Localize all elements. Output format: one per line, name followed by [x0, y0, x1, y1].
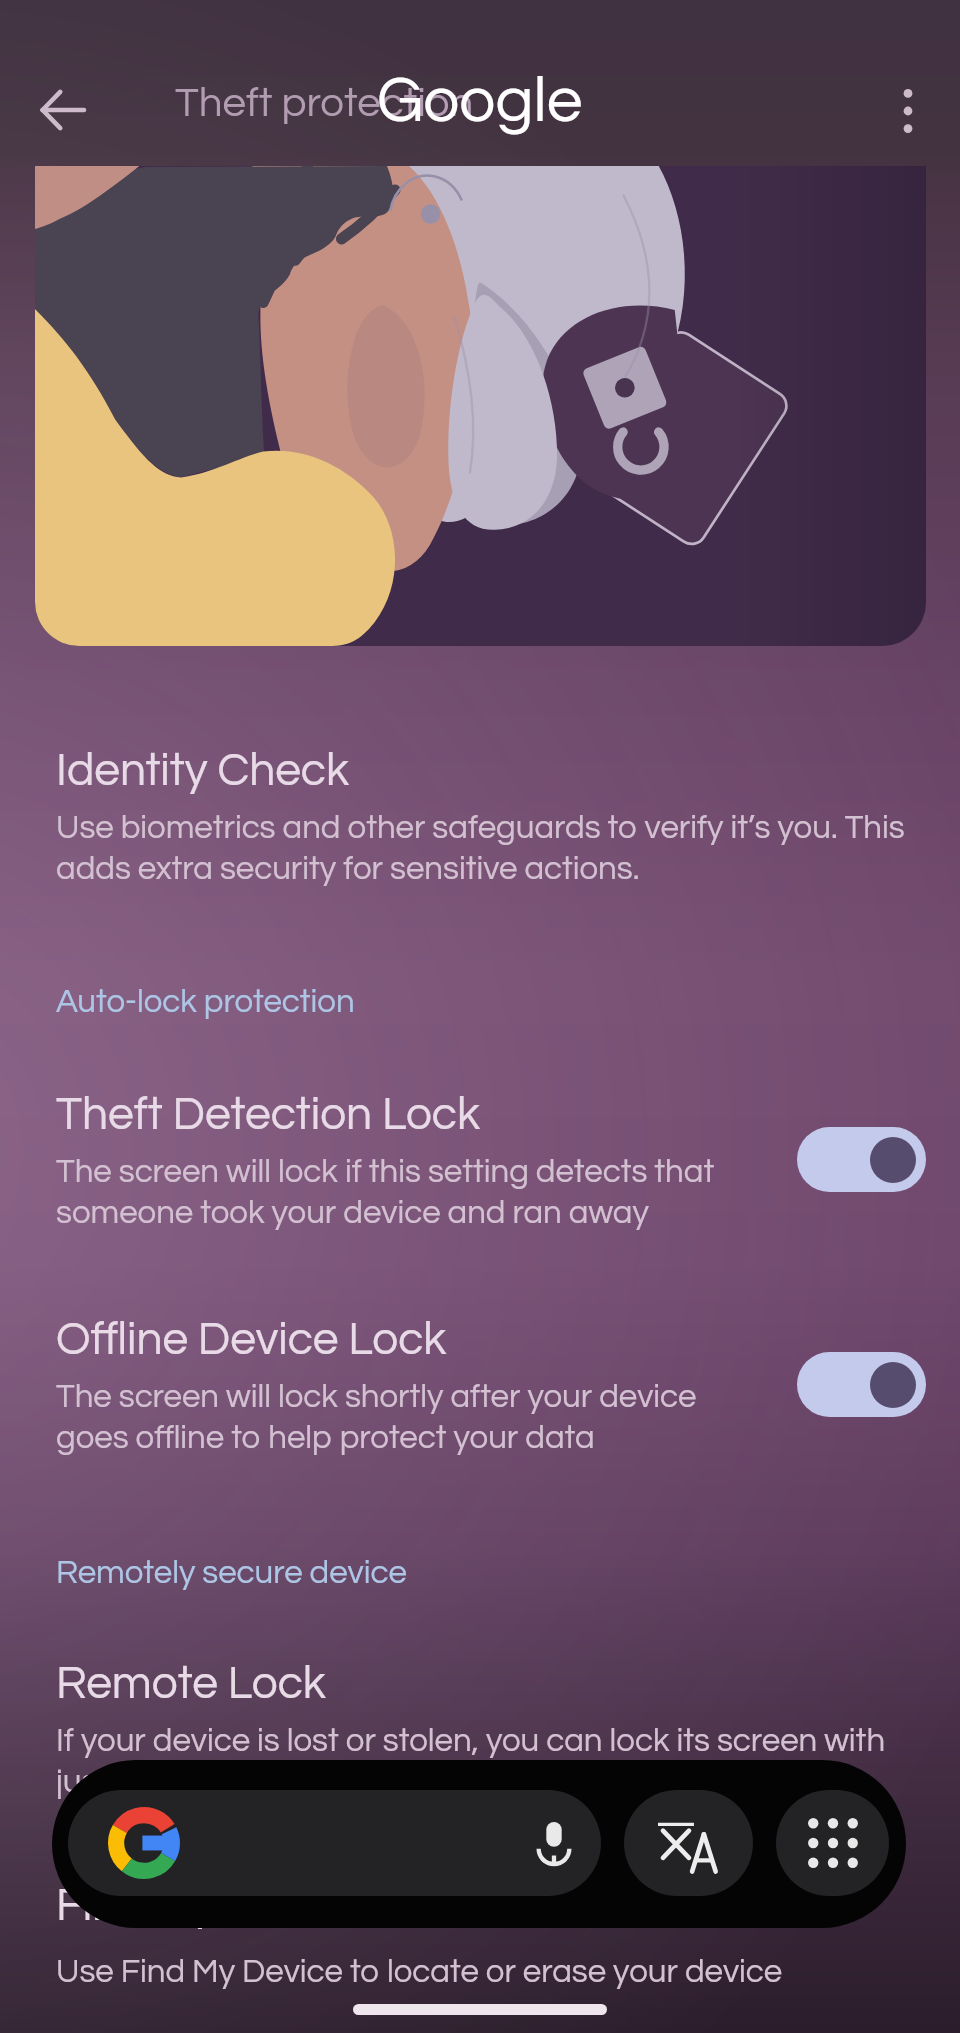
staticText: Use Find My Device to locate or erase yo… [56, 1955, 912, 1989]
staticText: Theft Detection Lock [56, 1091, 480, 1138]
button[interactable] [0, 1855, 960, 2005]
button[interactable]: Back [24, 72, 100, 148]
staticText: The screen will lock if this setting det… [56, 1155, 756, 1230]
button[interactable]: Toggle [797, 1352, 926, 1417]
button[interactable] [0, 700, 960, 900]
button[interactable]: Voice search [516, 1805, 592, 1881]
button[interactable]: Search [68, 1790, 601, 1896]
staticText: Identity Check [56, 747, 349, 794]
staticText: Remotely secure device [56, 1556, 407, 1590]
button[interactable] [0, 1060, 960, 1260]
button[interactable]: More options [871, 74, 945, 148]
staticText: Google [377, 69, 583, 135]
staticText: Remote Lock [56, 1660, 326, 1707]
staticText: Find My Device [56, 1882, 366, 1929]
button[interactable]: Toggle [797, 1127, 926, 1192]
staticText: Use biometrics and other safeguards to v… [56, 811, 912, 886]
button[interactable]: Translate [624, 1790, 753, 1896]
button[interactable]: Apps [776, 1790, 889, 1896]
staticText: If your device is lost or stolen, you ca… [56, 1724, 912, 1799]
staticText: Auto-lock protection [56, 985, 355, 1019]
button[interactable] [0, 1630, 960, 1805]
staticText: Offline Device Lock [56, 1316, 447, 1363]
button[interactable] [0, 1285, 960, 1485]
staticText: Theft protection [175, 82, 474, 125]
staticText: The screen will lock shortly after your … [56, 1380, 756, 1455]
